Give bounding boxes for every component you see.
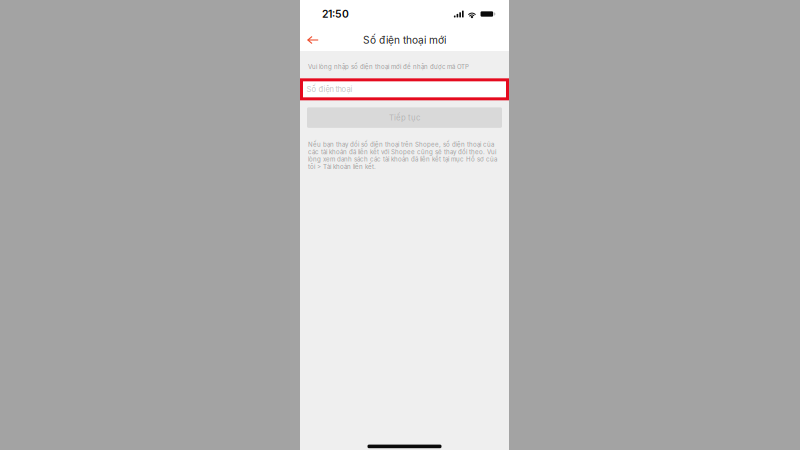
staticText: Tiếp tục (389, 113, 420, 122)
staticText: Nếu bạn thay đổi số điện thoại trên Shop… (308, 141, 497, 170)
staticText: Số điện thoại (306, 85, 352, 94)
staticText: 21:50 (322, 8, 349, 20)
button[interactable]: Tiếp tục (307, 107, 502, 128)
staticText: Số điện thoại mới (363, 34, 446, 46)
button[interactable]: Số điện thoại (300, 78, 509, 100)
button[interactable]: Back (300, 29, 325, 51)
staticText: Vui lòng nhập số điện thoại mới để nhận … (308, 63, 469, 70)
